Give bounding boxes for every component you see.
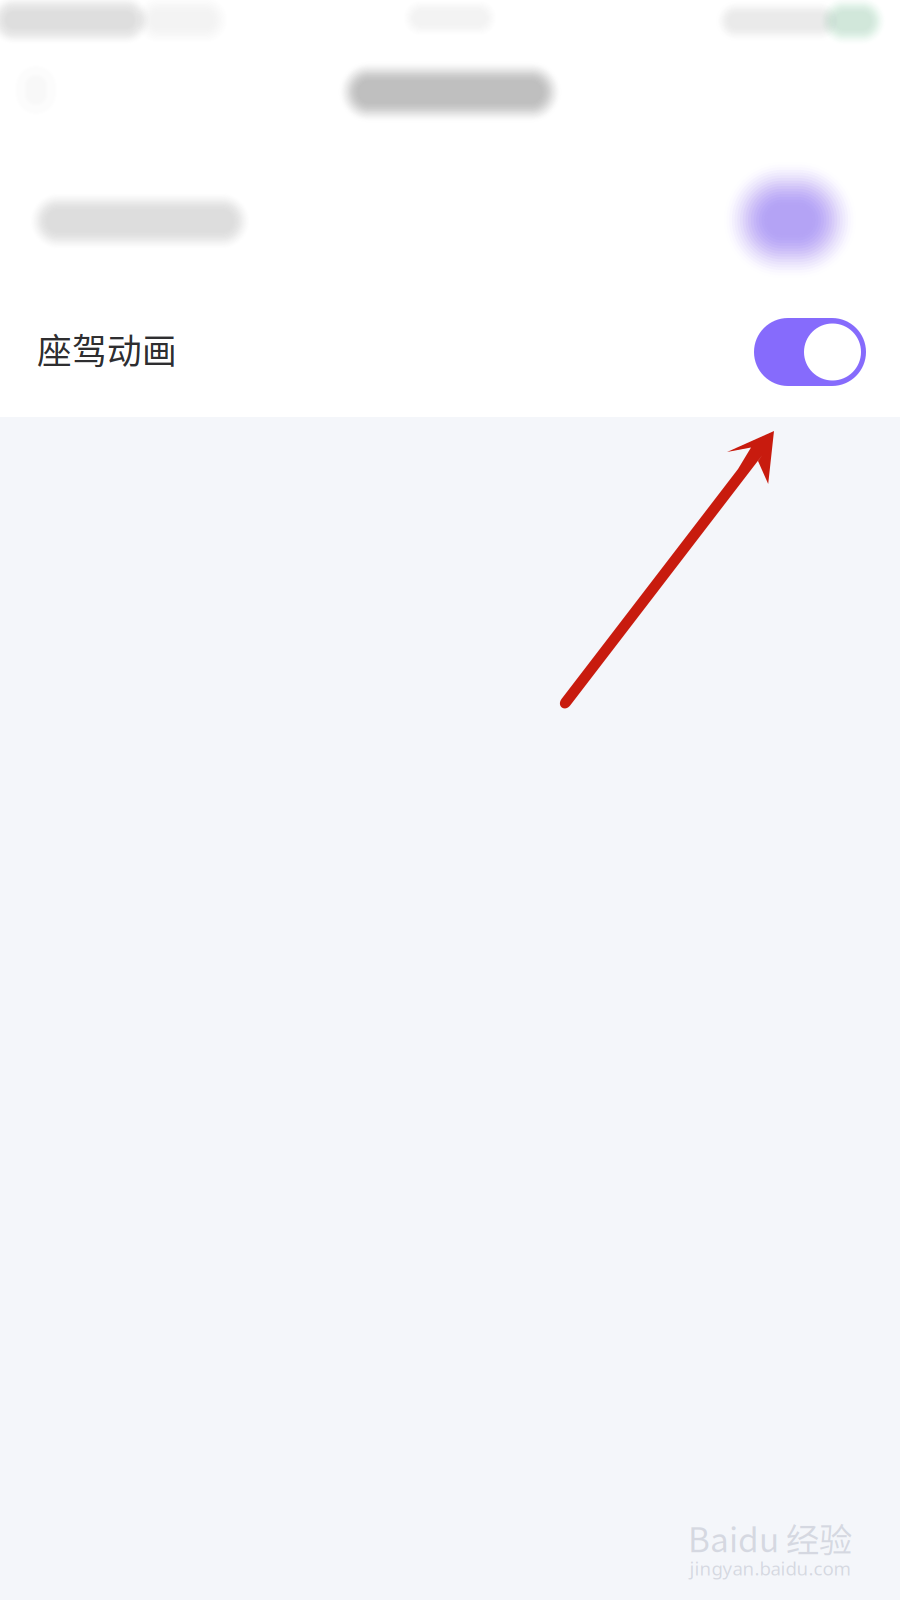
staticText: Baidu 经验 [688,1513,852,1562]
staticText: jingyan.baidu.com [689,1556,850,1580]
staticText: 座驾动画 [37,324,177,374]
button[interactable]: 座驾动画 [0,293,900,410]
